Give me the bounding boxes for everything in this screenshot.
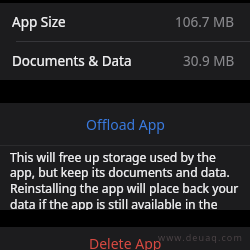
staticText: This will free up storage used by the ap… <box>10 149 243 210</box>
staticText: www.deuaq.com <box>158 231 243 243</box>
staticText: 30.9 MB <box>183 52 235 70</box>
button[interactable]: Delete App <box>0 227 250 250</box>
staticText: App Size <box>12 13 66 31</box>
staticText: 106.7 MB <box>175 13 235 31</box>
staticText: Offload App <box>86 115 165 134</box>
button[interactable]: Offload App <box>0 103 250 145</box>
button[interactable]: Documents & Data <box>0 42 250 80</box>
staticText: Delete App <box>89 234 162 250</box>
button[interactable]: App Size <box>0 3 250 41</box>
staticText: Documents & Data <box>12 52 132 70</box>
